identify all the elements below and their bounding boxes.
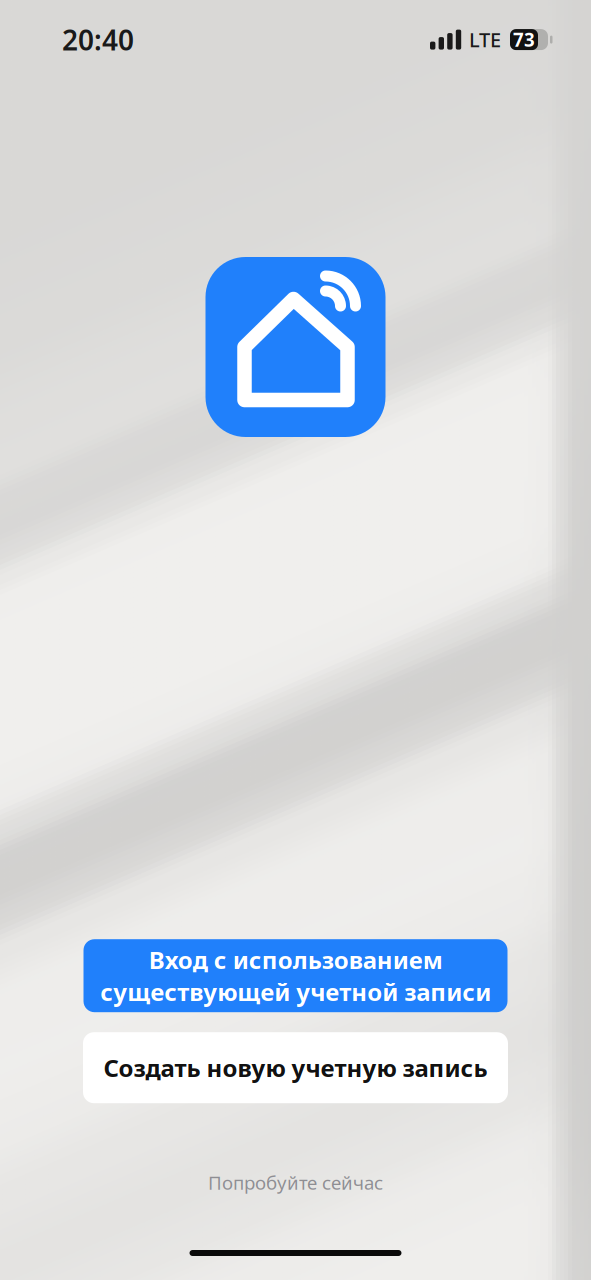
button[interactable]: Попробуйте сейчас bbox=[208, 1170, 383, 1195]
staticText: 73 bbox=[513, 27, 535, 52]
button[interactable]: Вход с использованием существующей учетн… bbox=[83, 939, 507, 1012]
staticText: Создать новую учетную запись bbox=[103, 1052, 487, 1084]
staticText: Попробуйте сейчас bbox=[208, 1170, 383, 1195]
button[interactable]: Создать новую учетную запись bbox=[83, 1032, 508, 1103]
staticText: 20:40 bbox=[62, 21, 134, 58]
staticText: LTE bbox=[469, 26, 501, 53]
staticText: Вход с использованием существующей учетн… bbox=[100, 944, 491, 1007]
